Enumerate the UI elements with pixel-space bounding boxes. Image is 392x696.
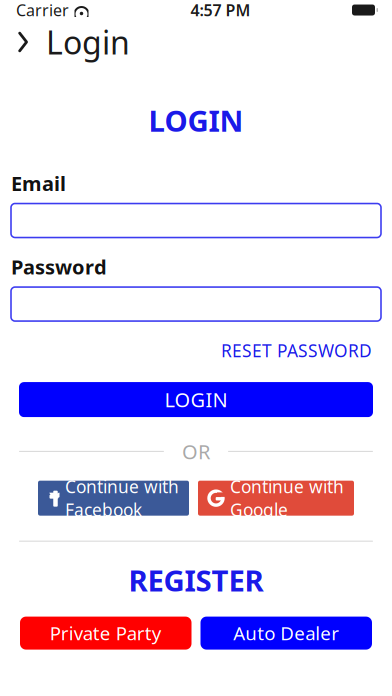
staticText: Email [11,170,66,197]
button[interactable]: Private Party [20,617,191,650]
staticText: OR [182,438,210,465]
staticText: Private Party [50,621,162,645]
button[interactable]: LOGIN [19,382,373,417]
button[interactable]: Back [0,20,46,64]
staticText: LOGIN [148,101,243,140]
staticText: Auto Dealer [233,621,339,645]
button[interactable]: Continue with Facebook [38,481,189,516]
staticText: Password [11,253,107,280]
staticText: Login [46,21,130,63]
staticText: REGISTER [128,561,263,600]
staticText: Continue with Google [230,475,344,521]
button[interactable]: Auto Dealer [200,617,372,650]
button[interactable]: Continue with Google [198,481,354,516]
button[interactable]: RESET PASSWORD [0,335,392,366]
staticText: Carrier [16,0,69,21]
staticText: 4:57 PM [190,0,250,21]
staticText: RESET PASSWORD [221,339,372,362]
staticText: Continue with Facebook [65,475,179,521]
staticText: LOGIN [164,386,227,413]
